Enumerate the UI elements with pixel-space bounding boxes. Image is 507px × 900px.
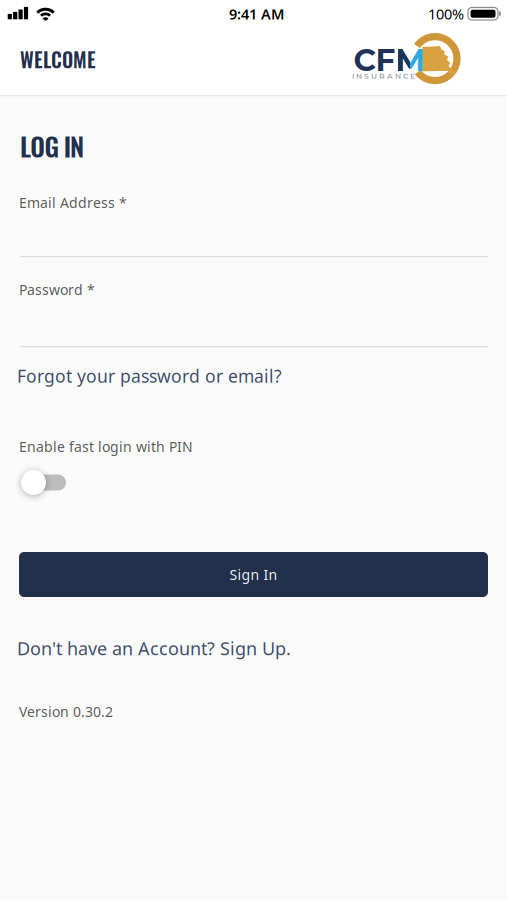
staticText: Forgot your password or email? <box>17 364 282 388</box>
staticText: M <box>395 41 425 79</box>
button[interactable]: Enable fast login with PIN <box>19 470 64 495</box>
staticText: CF <box>353 41 395 79</box>
staticText: I N S U R A N C E <box>352 71 415 81</box>
button[interactable]: Don't have an Account? Sign Up. <box>17 636 291 660</box>
staticText: Email Address * <box>19 193 127 212</box>
staticText: 100% <box>428 4 464 24</box>
button[interactable]: Forgot your password or email? <box>17 364 282 388</box>
staticText: Enable fast login with PIN <box>19 437 193 456</box>
staticText: Version 0.30.2 <box>19 702 113 721</box>
staticText: Password * <box>19 280 95 299</box>
button[interactable]: Sign In <box>19 552 488 597</box>
staticText: M <box>395 41 425 79</box>
staticText: LOG IN <box>20 127 84 165</box>
staticText: WELCOME <box>20 45 96 74</box>
staticText: Don't have an Account? Sign Up. <box>17 636 291 660</box>
staticText: Sign In <box>229 565 277 584</box>
staticText: 9:41 AM <box>229 4 284 24</box>
